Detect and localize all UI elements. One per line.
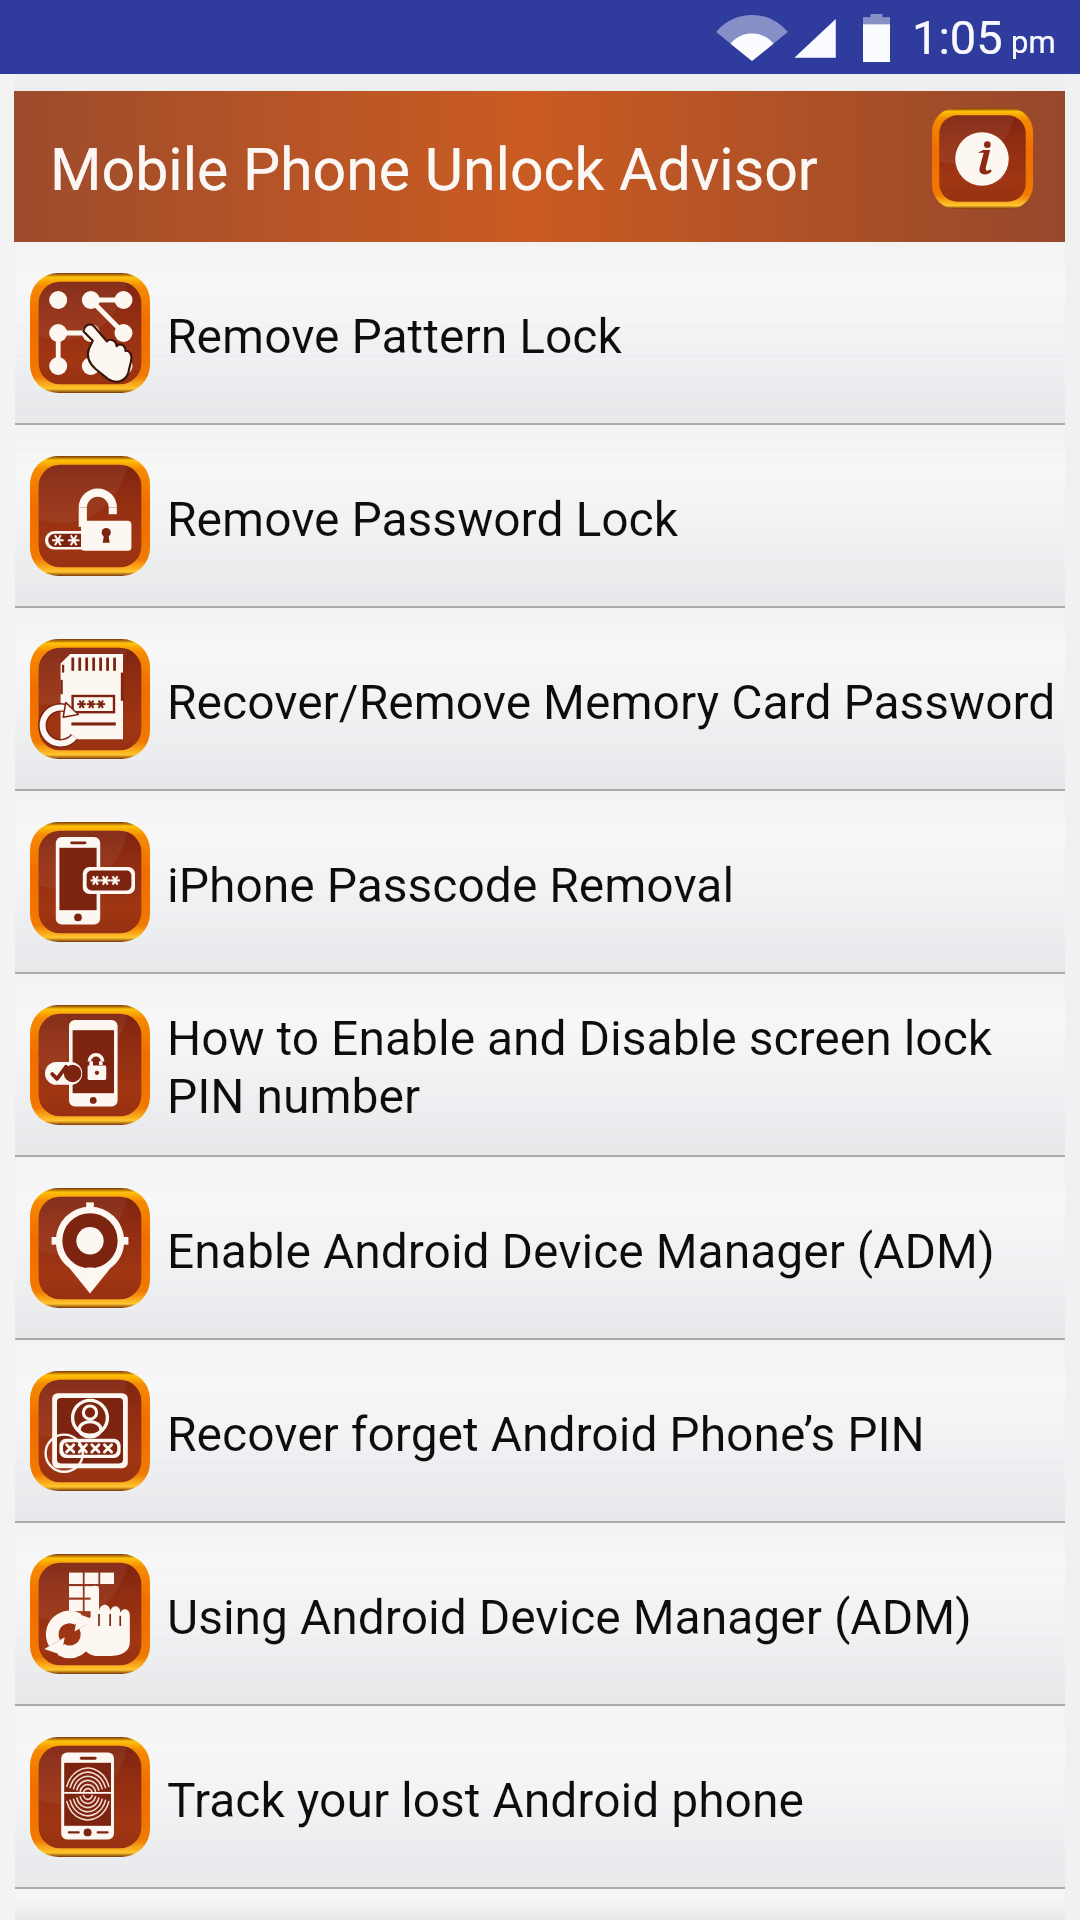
button[interactable]: Enable Android Device Manager (ADM) (0, 1157, 1080, 1338)
button[interactable]: Remove Password Lock (0, 425, 1080, 606)
staticText: iPhone Passcode Removal (167, 857, 735, 913)
button[interactable]: Recover forget Android Phone’s PIN (0, 1340, 1080, 1521)
staticText: Remove Password Lock (167, 491, 679, 547)
staticText: Remove Pattern Lock (167, 308, 622, 364)
staticText: 1:05 (912, 10, 1003, 65)
button[interactable]: Remove Pattern Lock (0, 242, 1080, 423)
staticText: Recover forget Android Phone’s PIN (167, 1406, 925, 1462)
staticText: Recover/Remove Memory Card Password (167, 674, 1056, 730)
button[interactable]: Info (932, 108, 1033, 209)
staticText: Track your lost Android phone (167, 1772, 804, 1828)
staticText: Mobile Phone Unlock Advisor (50, 135, 818, 204)
staticText: pm (1011, 24, 1056, 60)
staticText: Enable Android Device Manager (ADM) (167, 1223, 995, 1279)
button[interactable]: Recover/Remove Memory Card Password (0, 608, 1080, 789)
button[interactable]: iPhone Passcode Removal (0, 791, 1080, 972)
staticText: Using Android Device Manager (ADM) (167, 1589, 972, 1645)
button[interactable]: Using Android Device Manager (ADM) (0, 1523, 1080, 1704)
button[interactable]: How to Enable and Disable screen lock PI… (0, 974, 1080, 1155)
button[interactable]: Track your lost Android phone (0, 1706, 1080, 1887)
staticText: How to Enable and Disable screen lock PI… (167, 1010, 1058, 1125)
